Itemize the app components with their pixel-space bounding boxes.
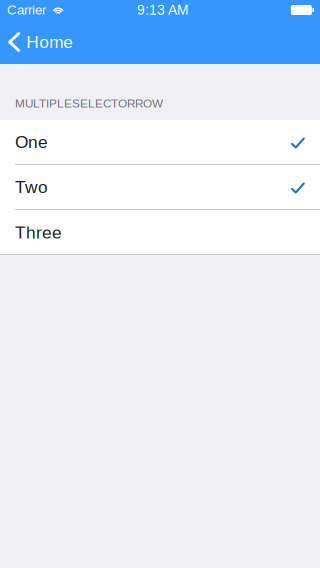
button[interactable]: Home bbox=[0, 20, 83, 64]
staticText: Carrier bbox=[7, 3, 46, 17]
button[interactable]: One bbox=[0, 120, 320, 165]
staticText: Home bbox=[26, 32, 73, 52]
staticText: Two bbox=[15, 177, 48, 197]
button[interactable]: Three bbox=[0, 210, 320, 255]
staticText: MULTIPLESELECTORROW bbox=[15, 97, 163, 110]
staticText: One bbox=[15, 132, 48, 152]
staticText: 9:13 AM bbox=[137, 2, 189, 18]
staticText: Three bbox=[15, 223, 62, 242]
button[interactable]: Two bbox=[0, 165, 320, 210]
